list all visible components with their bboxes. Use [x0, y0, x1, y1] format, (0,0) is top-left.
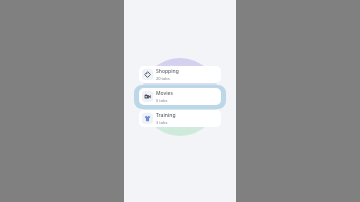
staticText: 5 tabs — [156, 98, 168, 103]
other: Movies — [144, 93, 151, 100]
staticText: Shopping — [156, 68, 179, 75]
staticText: Training — [156, 112, 176, 119]
other: Training — [144, 115, 151, 122]
button[interactable]: Training — [139, 110, 221, 127]
button[interactable]: Shopping — [139, 66, 221, 83]
staticText: 20 tabs — [156, 76, 170, 81]
other: Shopping — [144, 71, 151, 78]
button[interactable]: Movies — [139, 88, 221, 105]
staticText: 3 tabs — [156, 120, 168, 125]
staticText: Movies — [156, 90, 173, 97]
